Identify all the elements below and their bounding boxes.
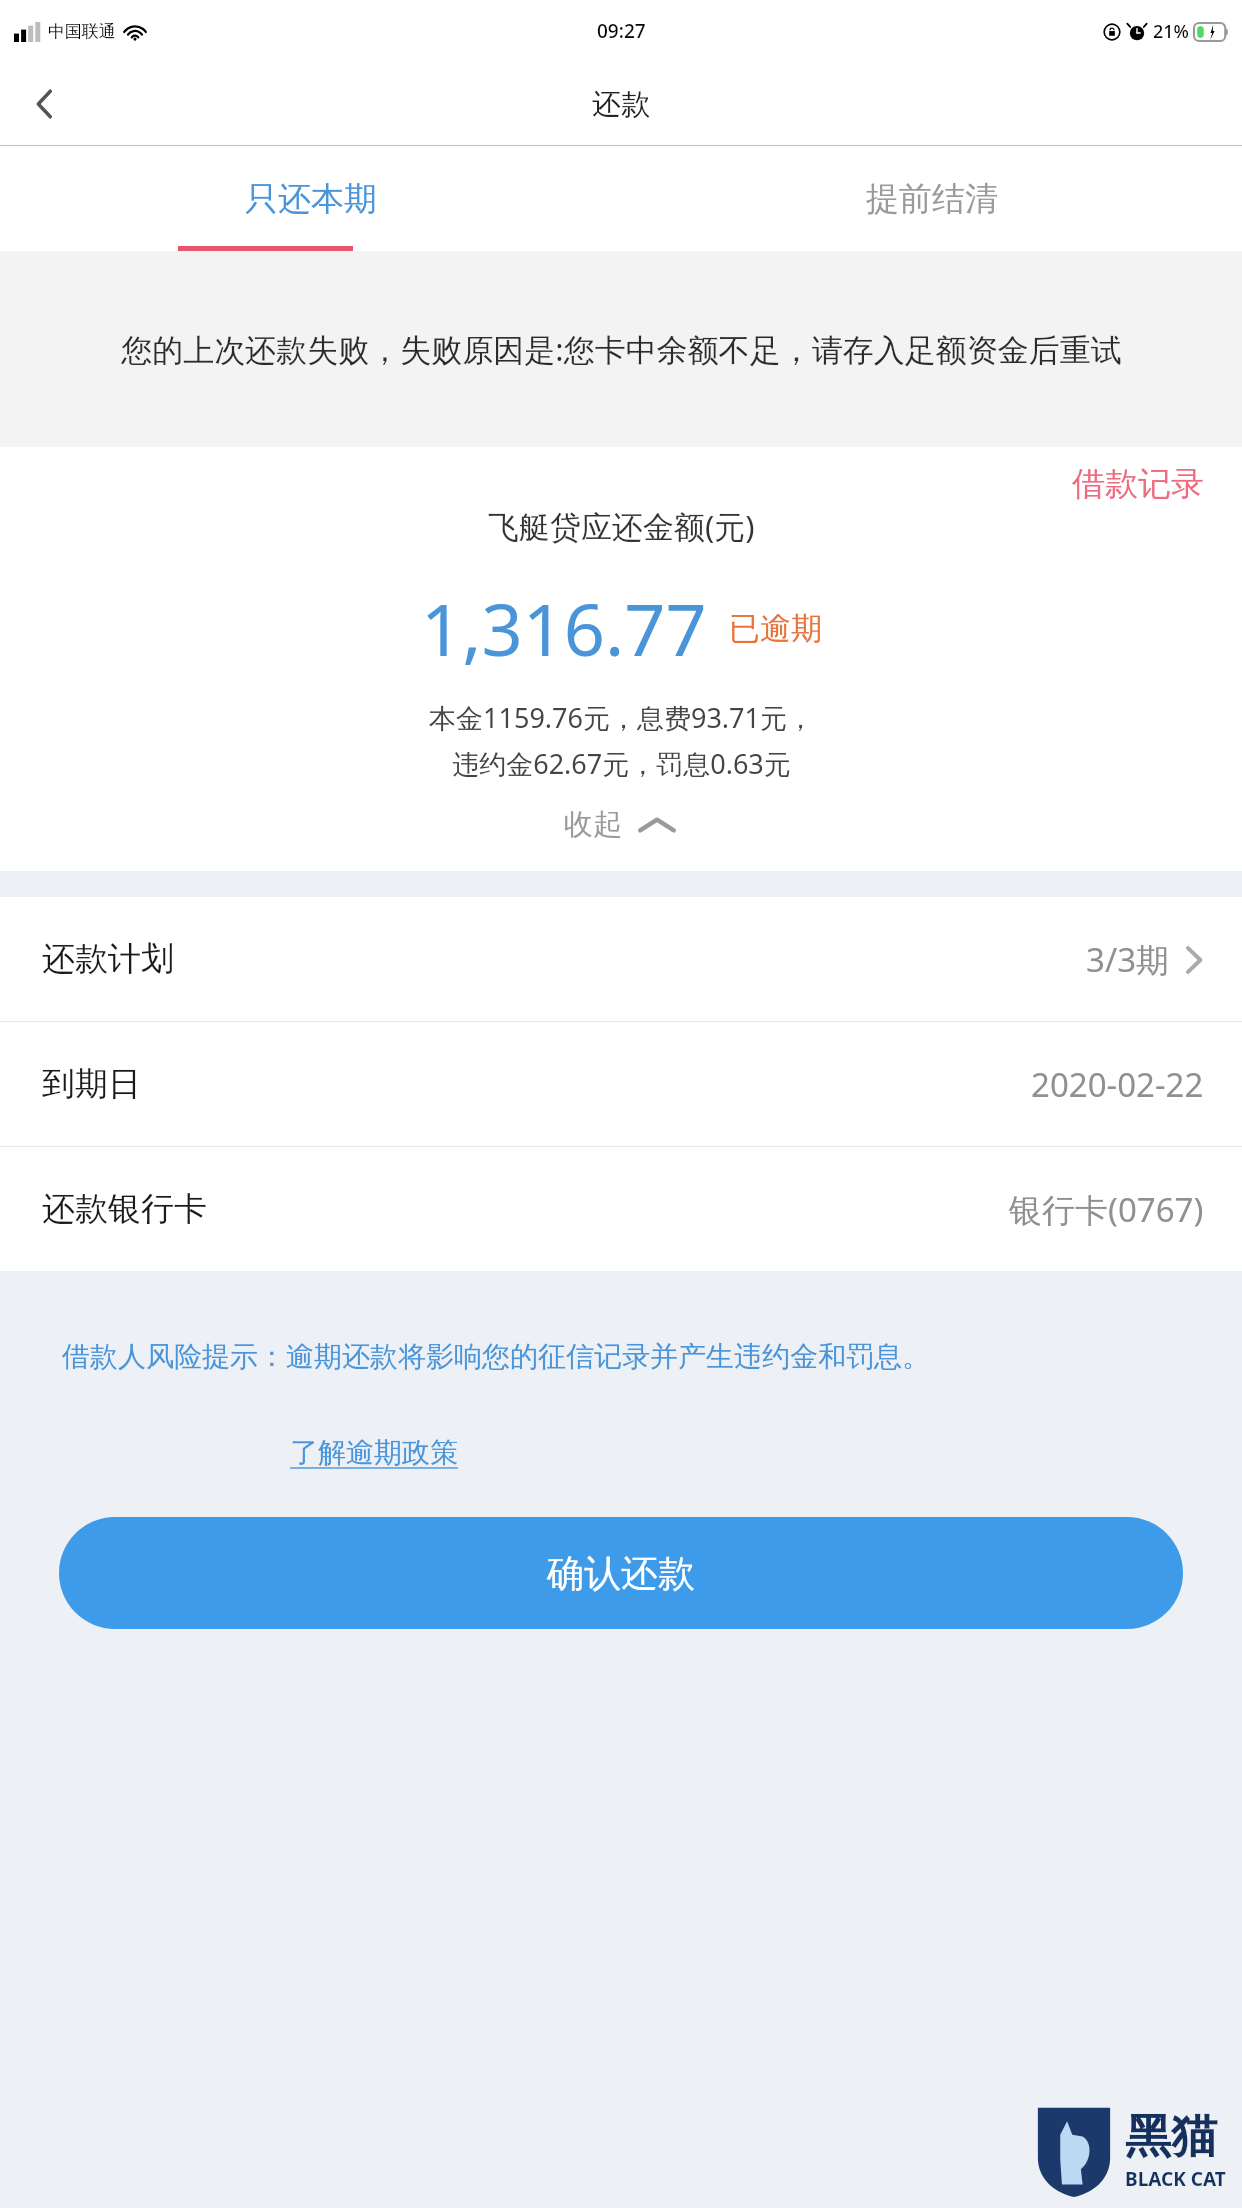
- button[interactable]: 还款银行卡: [0, 1147, 1242, 1271]
- button[interactable]: 借款记录: [1072, 463, 1204, 505]
- staticText: 3/3期: [1086, 937, 1170, 982]
- staticText: 借款记录: [1072, 463, 1204, 505]
- staticText: 09:27: [597, 18, 646, 44]
- staticText: 已逾期: [729, 609, 822, 648]
- staticText: 银行卡(0767): [1009, 1187, 1204, 1232]
- button[interactable]: 提前结清: [621, 146, 1242, 251]
- staticText: BLACK CAT: [1125, 2166, 1226, 2192]
- button[interactable]: 了解逾期政策: [290, 1435, 458, 1470]
- staticText: 2020-02-22: [1031, 1062, 1204, 1107]
- staticText: 1,316.77: [421, 579, 707, 677]
- staticText: 还款银行卡: [42, 1188, 207, 1230]
- button[interactable]: 到期日: [0, 1022, 1242, 1146]
- staticText: 到期日: [42, 1063, 141, 1105]
- staticText: 21%: [1153, 19, 1189, 44]
- staticText: 飞艇贷应还金额(元): [488, 505, 755, 547]
- staticText: 中国联通: [48, 21, 116, 42]
- staticText: 本金1159.76元，息费93.71元， 违约金62.67元，罚息0.63元: [429, 699, 814, 782]
- button[interactable]: 确认还款: [59, 1517, 1183, 1629]
- staticText: 确认还款: [547, 1550, 695, 1597]
- staticText: 还款计划: [42, 938, 174, 980]
- staticText: 收起: [564, 806, 622, 843]
- button[interactable]: 只还本期: [0, 146, 621, 251]
- staticText: 还款: [592, 86, 650, 123]
- button[interactable]: 收起: [564, 806, 678, 843]
- button[interactable]: Back: [0, 62, 90, 146]
- staticText: 提前结清: [866, 178, 998, 220]
- staticText: 借款人风险提示：逾期还款将影响您的征信记录并产生违约金和罚息。: [62, 1339, 930, 1374]
- button[interactable]: 还款计划: [0, 897, 1242, 1021]
- staticText: 只还本期: [245, 178, 377, 220]
- staticText: 黑猫: [1125, 2108, 1217, 2166]
- staticText: 您的上次还款失败，失败原因是:您卡中余额不足，请存入足额资金后重试: [121, 328, 1122, 370]
